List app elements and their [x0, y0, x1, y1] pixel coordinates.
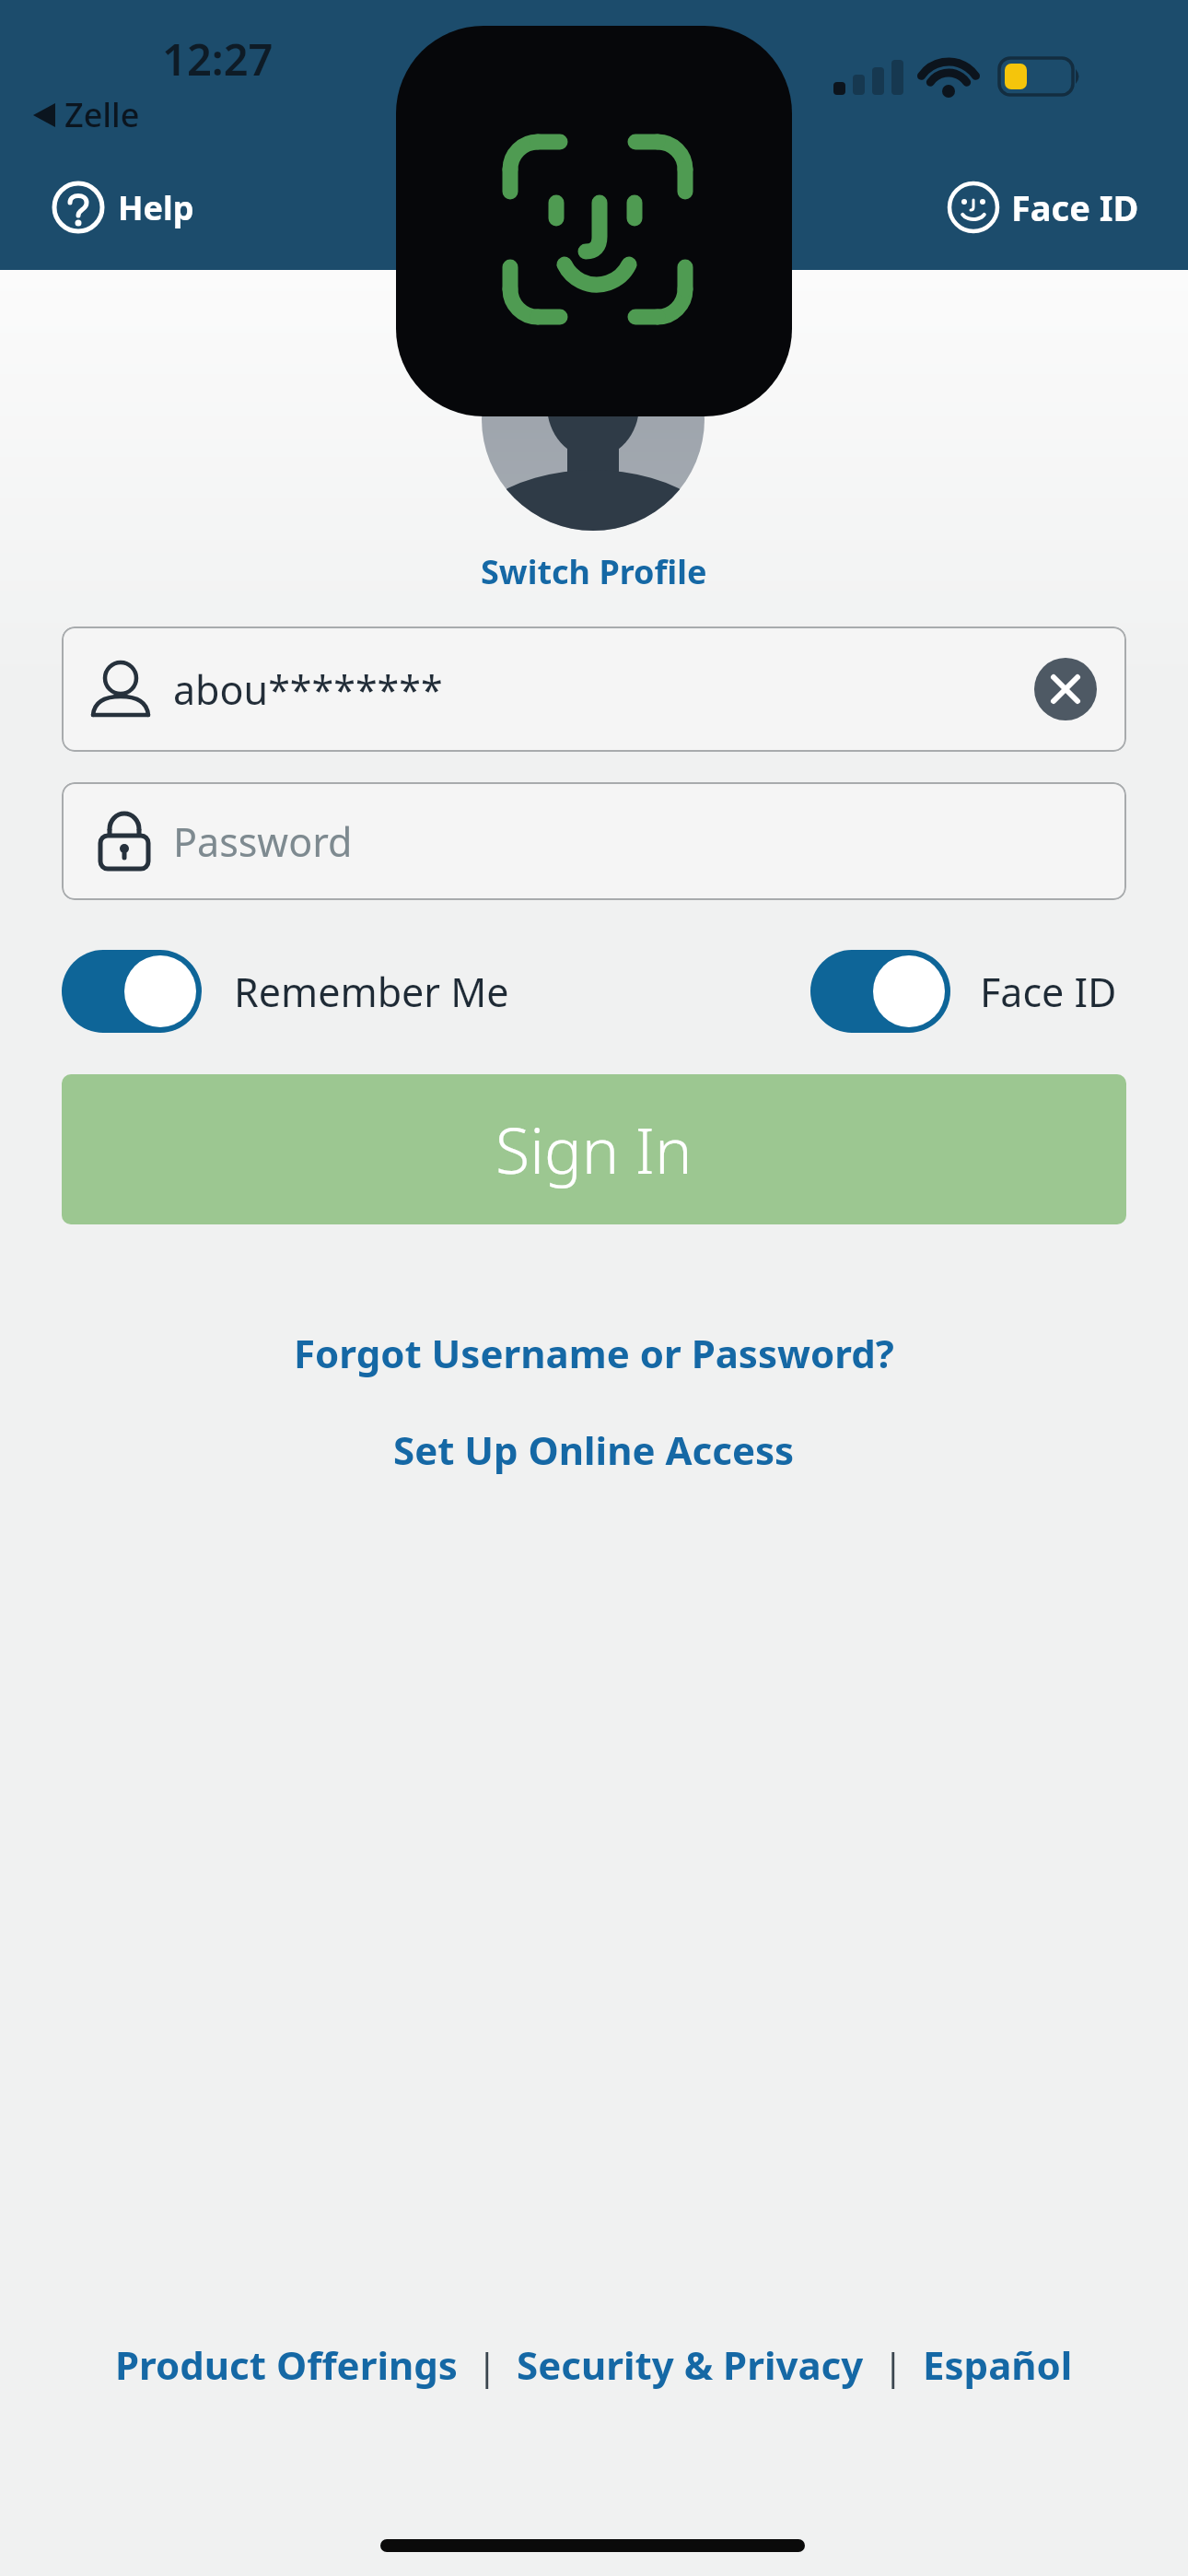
- staticText: Switch Profile: [481, 549, 707, 594]
- button[interactable]: Face ID: [947, 181, 1139, 234]
- staticText: Product Offerings: [115, 2338, 458, 2391]
- button[interactable]: abou********: [62, 626, 1126, 752]
- staticText: Sign In: [495, 1107, 693, 1192]
- button[interactable]: Help: [52, 181, 194, 234]
- button[interactable]: [810, 950, 950, 1033]
- staticText: Password: [173, 814, 353, 869]
- button[interactable]: [62, 950, 202, 1033]
- button[interactable]: Password: [62, 782, 1126, 900]
- button[interactable]: Sign In: [62, 1074, 1126, 1224]
- button[interactable]: Product Offerings: [115, 2338, 458, 2391]
- staticText: Forgot Username or Password?: [294, 1327, 894, 1379]
- staticText: |: [458, 2340, 517, 2390]
- button[interactable]: [1034, 658, 1097, 720]
- staticText: Set Up Online Access: [393, 1423, 795, 1476]
- button[interactable]: Forgot Username or Password?: [294, 1327, 894, 1379]
- staticText: Zelle: [64, 92, 140, 137]
- staticText: Face ID: [1011, 183, 1139, 231]
- staticText: Español: [923, 2338, 1073, 2391]
- button[interactable]: Switch Profile: [481, 549, 707, 594]
- staticText: |: [864, 2340, 923, 2390]
- staticText: 12:27: [162, 29, 274, 88]
- staticText: Remember Me: [234, 965, 509, 1019]
- staticText: Help: [118, 185, 194, 230]
- staticText: abou********: [173, 662, 443, 717]
- button[interactable]: Set Up Online Access: [393, 1423, 795, 1476]
- button[interactable]: Security & Privacy: [517, 2338, 864, 2391]
- staticText: Face ID: [980, 965, 1117, 1019]
- staticText: Security & Privacy: [517, 2338, 864, 2391]
- button[interactable]: Español: [923, 2338, 1073, 2391]
